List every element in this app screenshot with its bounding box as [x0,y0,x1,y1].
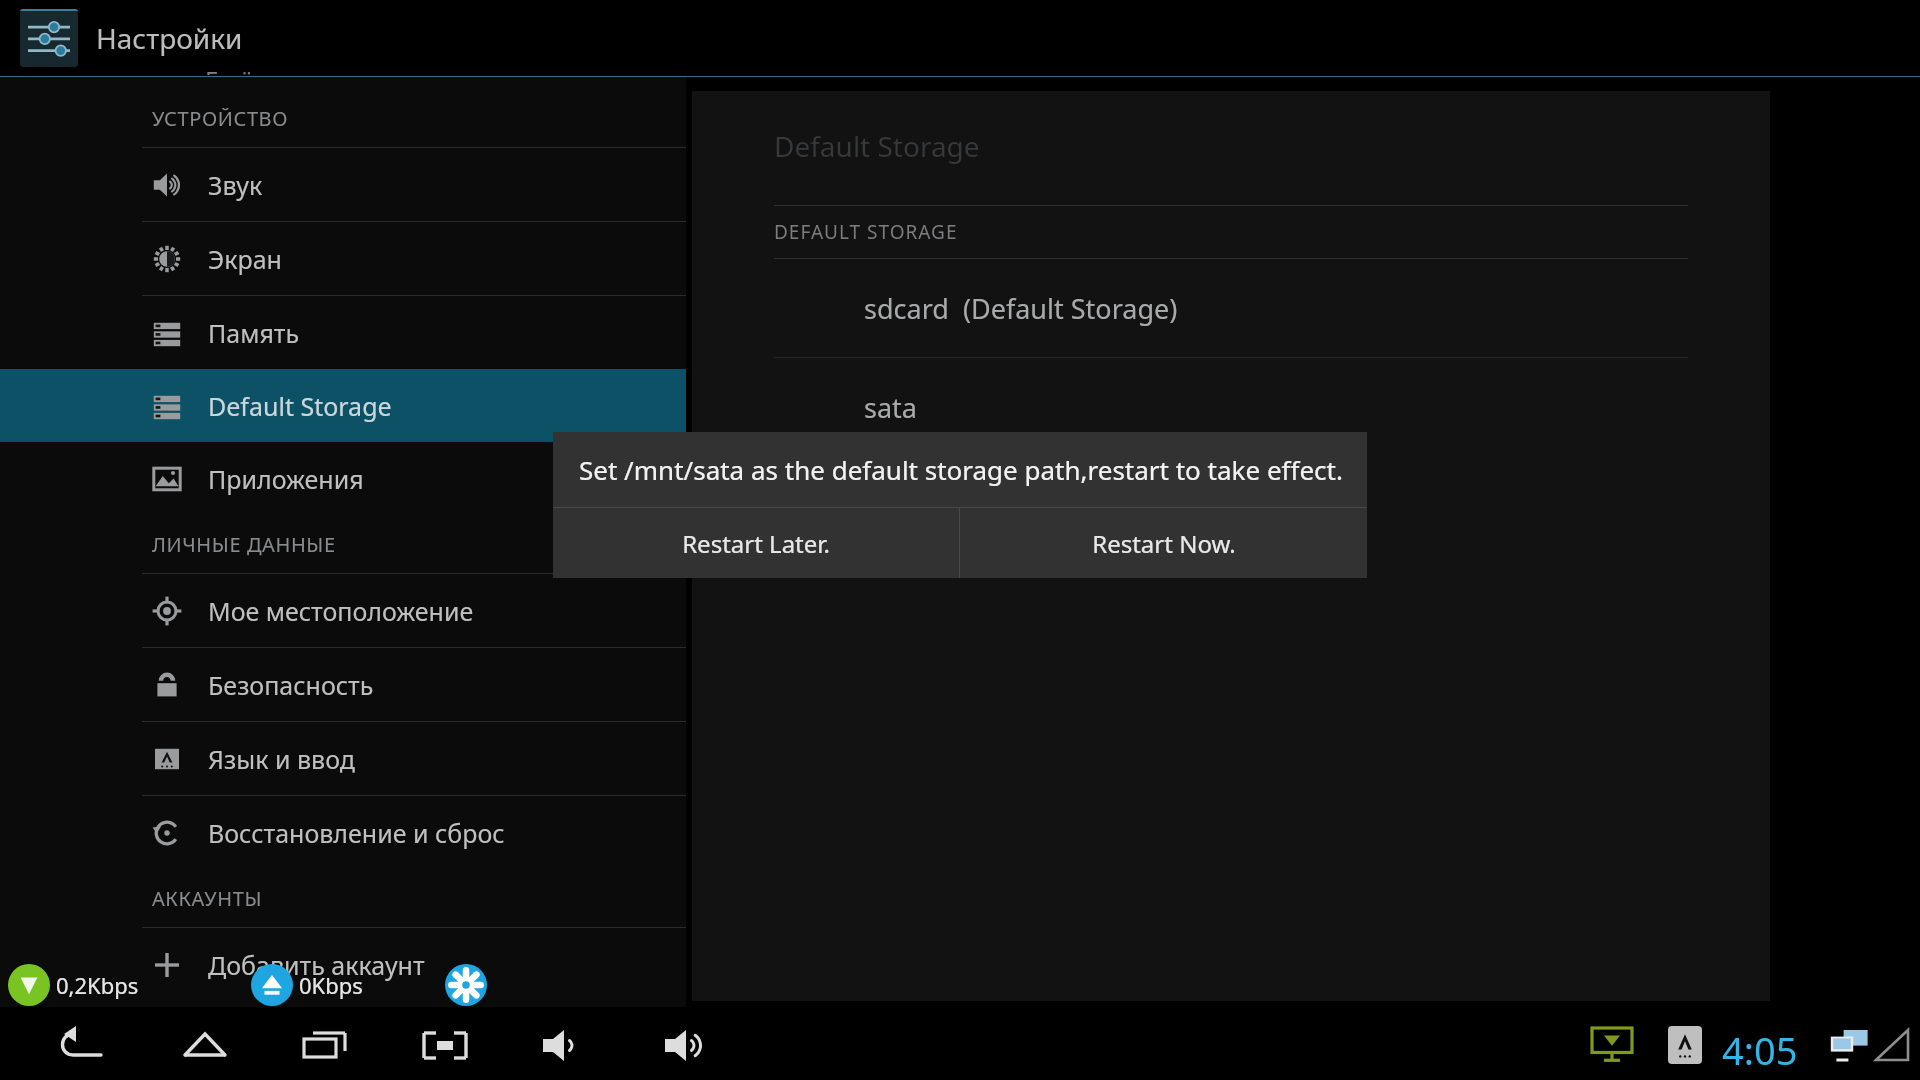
button[interactable]: Экран [0,222,686,295]
button[interactable]: Settings [445,964,487,1006]
button[interactable]: Restart Now. [960,508,1367,578]
button[interactable]: Screenshot [420,1020,470,1070]
button[interactable]: Default Storage [0,369,686,442]
button[interactable]: Display output [1592,1028,1632,1062]
staticText: Мое местоположение [208,594,474,628]
staticText: Экран [208,242,282,276]
staticText: Restart Later. [682,527,830,560]
button[interactable]: Память [0,296,686,369]
button[interactable]: Язык и ввод [0,722,686,795]
staticText: Язык и ввод [208,742,355,776]
button[interactable]: Home [180,1020,230,1070]
button[interactable]: Settings app icon [20,9,78,67]
staticText: Приложения [208,462,364,496]
button[interactable]: Добавить аккаунт [0,928,686,1001]
button[interactable]: Volume up [660,1020,710,1070]
button[interactable]: Приложения [0,442,686,515]
staticText: Ещё... [205,63,273,75]
staticText: Default Storage [774,127,980,165]
staticText: 4:05 [1722,1024,1798,1076]
staticText: DEFAULT STORAGE [774,219,958,245]
staticText: УСТРОЙСТВО [152,105,289,132]
button[interactable]: Мое местоположение [0,574,686,647]
staticText: 0,2Kbps [56,970,139,1000]
staticText: АККАУНТЫ [152,885,262,912]
staticText: 0Kbps [299,970,363,1000]
staticText: Безопасность [208,668,374,702]
button[interactable]: Input method [1668,1026,1702,1064]
staticText: ЛИЧНЫЕ ДАННЫЕ [152,531,336,558]
staticText: Звук [208,168,263,202]
staticText: Память [208,316,300,350]
button[interactable]: sata [692,358,1770,456]
button[interactable]: Восстановление и сброс [0,796,686,869]
button[interactable]: Restart Later. [553,508,959,578]
button[interactable]: Безопасность [0,648,686,721]
staticText: Добавить аккаунт [208,948,425,982]
staticText: Restart Now. [1092,527,1236,560]
staticText: Восстановление и сброс [208,816,505,850]
button[interactable]: sdcard (Default Storage) [692,259,1770,357]
button[interactable]: Back [58,1020,108,1070]
staticText: sata [864,389,917,426]
staticText: Set /mnt/sata as the default storage pat… [579,452,1343,487]
button[interactable]: Звук [0,148,686,221]
button[interactable]: Recent apps [300,1020,350,1070]
staticText: Настройки [96,19,243,57]
button[interactable]: Network [1830,1030,1870,1060]
staticText: sdcard (Default Storage) [864,290,1178,327]
staticText: Default Storage [208,389,392,423]
button[interactable]: Volume down [538,1020,588,1070]
